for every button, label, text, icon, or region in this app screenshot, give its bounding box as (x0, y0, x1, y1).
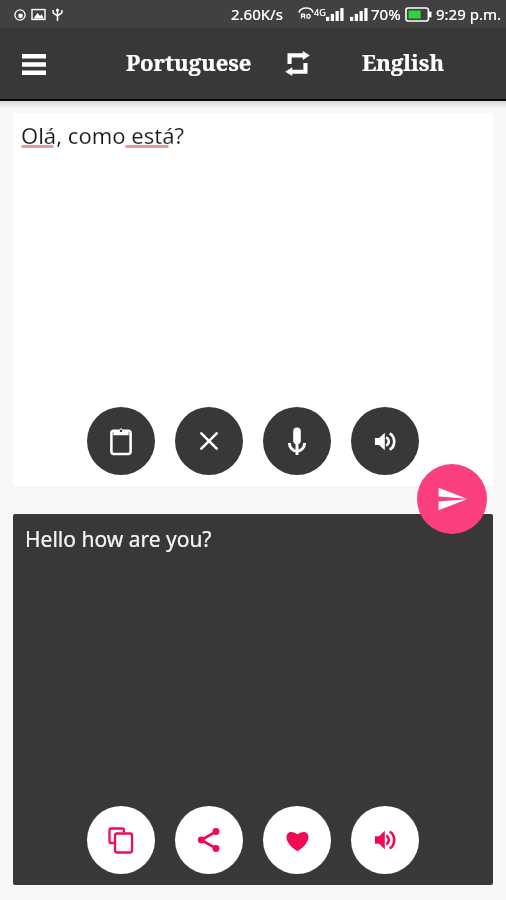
button[interactable]: Copy (87, 806, 155, 874)
button[interactable]: Listen (351, 407, 419, 475)
button[interactable]: Translate (417, 464, 487, 534)
button[interactable]: Swap languages (282, 48, 313, 79)
button[interactable]: Portuguese (126, 47, 252, 77)
staticText: Hello how are you? (25, 525, 212, 554)
button[interactable]: Listen (351, 806, 419, 874)
staticText: English (362, 47, 445, 77)
staticText: 2.60K/s (231, 4, 283, 24)
button[interactable]: Clear (175, 407, 243, 475)
staticText: 9:29 p.m. (436, 4, 501, 24)
button[interactable]: Speak (263, 407, 331, 475)
button[interactable]: Favorite (263, 806, 331, 874)
staticText: 4G (314, 6, 326, 18)
button[interactable]: Share (175, 806, 243, 874)
staticText: Olá, como está? (21, 120, 185, 150)
staticText: 70% (371, 4, 401, 24)
button[interactable]: Paste (87, 407, 155, 475)
button[interactable]: Menu (12, 42, 56, 86)
staticText: Portuguese (126, 47, 252, 77)
button[interactable]: English (362, 47, 445, 77)
